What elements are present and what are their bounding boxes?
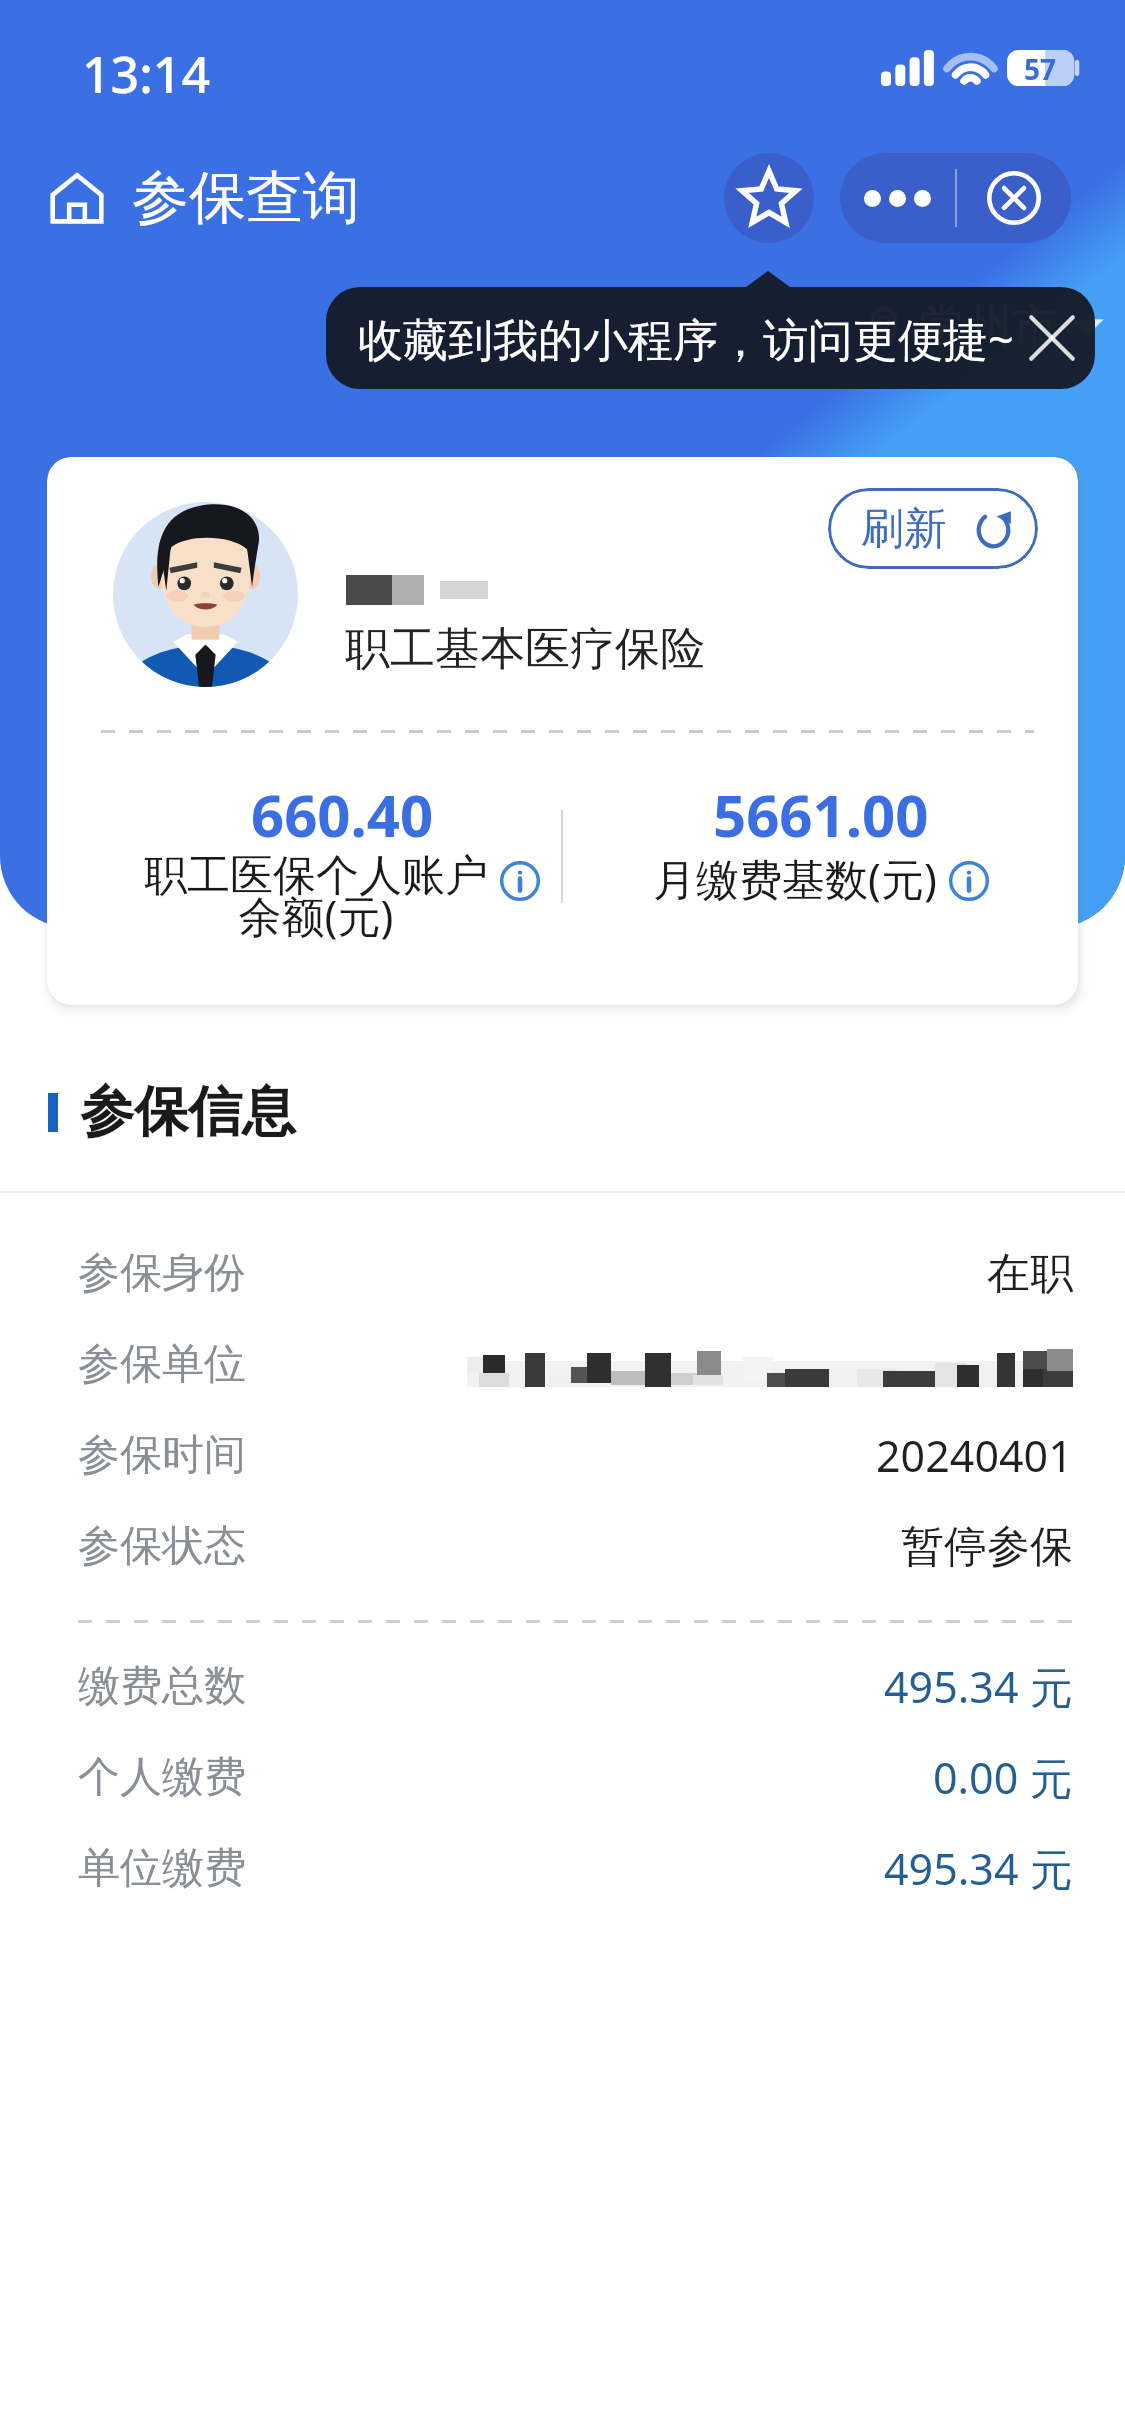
staticText: 495.34 元 — [884, 1839, 1073, 1898]
button[interactable]: Dismiss tip — [1019, 305, 1085, 371]
staticText: 暂停参保 — [901, 1520, 1073, 1574]
staticText: 13:14 — [82, 40, 210, 108]
button[interactable]: 收藏到我的小程序，访问更便捷~ — [326, 287, 1095, 389]
staticText: 单位缴费 — [78, 1842, 246, 1895]
staticText: 参保状态 — [78, 1520, 246, 1573]
staticText: 个人缴费 — [78, 1751, 246, 1804]
button[interactable]: 参保时间 — [78, 1410, 1073, 1501]
button[interactable]: 刷新 — [828, 488, 1038, 569]
staticText: 缴费总数 — [78, 1660, 246, 1713]
staticText: 参保身份 — [78, 1247, 246, 1300]
staticText: 刷新 — [861, 502, 947, 556]
staticText: 参保单位 — [78, 1338, 246, 1391]
button[interactable]: 5661.00 — [563, 775, 1078, 913]
staticText: 57 — [1024, 50, 1057, 86]
button[interactable]: 单位缴费 — [78, 1823, 1073, 1914]
staticText: 20240401 — [876, 1426, 1073, 1485]
button[interactable]: 参保单位 — [78, 1319, 1073, 1410]
staticText: 5661.00 — [713, 775, 929, 854]
staticText: 495.34 元 — [884, 1657, 1073, 1716]
button[interactable]: More options — [840, 153, 955, 243]
staticText: 在职 — [987, 1247, 1073, 1301]
button[interactable]: 缴费总数 — [78, 1641, 1073, 1732]
staticText: 职工医保个人账户 余额(元) — [144, 849, 488, 945]
staticText: 参保查询 — [132, 162, 360, 234]
staticText: 常州市 — [920, 298, 1058, 356]
button[interactable]: 个人缴费 — [78, 1732, 1073, 1823]
staticText: 参保信息 — [80, 1078, 296, 1146]
staticText: 0.00 元 — [933, 1748, 1073, 1807]
button[interactable]: Change city — [862, 292, 1104, 362]
button[interactable]: 参保状态 — [78, 1501, 1073, 1592]
staticText: 参保时间 — [78, 1429, 246, 1482]
button[interactable]: 660.40 — [85, 775, 599, 950]
staticText: 月缴费基数(元) — [653, 849, 937, 908]
staticText: 收藏到我的小程序，访问更便捷~ — [358, 308, 1019, 369]
button[interactable]: Close — [957, 153, 1071, 243]
button[interactable]: Home — [22, 143, 132, 253]
staticText: 职工基本医疗保险 — [345, 621, 705, 678]
button[interactable]: 参保身份 — [78, 1228, 1073, 1319]
staticText: 660.40 — [251, 775, 434, 854]
button[interactable]: Favorite — [724, 153, 814, 243]
